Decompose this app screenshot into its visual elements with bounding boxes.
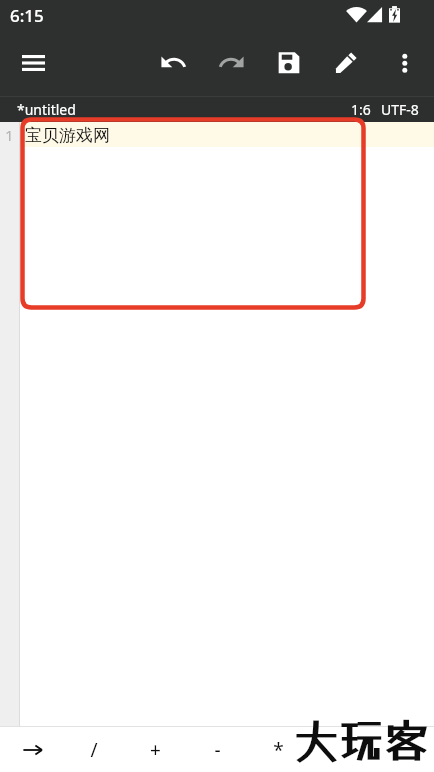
staticText: 1:6 xyxy=(351,100,371,119)
button[interactable]: Menu xyxy=(9,39,57,87)
button[interactable]: More options xyxy=(380,38,428,86)
staticText: - xyxy=(214,737,221,763)
button[interactable]: Save xyxy=(265,38,313,86)
staticText: * xyxy=(273,737,284,763)
button[interactable]: Redo xyxy=(207,38,255,86)
button[interactable]: / xyxy=(72,727,116,772)
button[interactable]: Edit xyxy=(322,38,370,86)
staticText: UTF-8 xyxy=(381,100,419,119)
staticText: 宝贝游戏网 xyxy=(25,125,110,146)
button[interactable]: * xyxy=(256,727,300,772)
button[interactable]: - xyxy=(195,727,239,772)
button[interactable]: Undo xyxy=(149,38,197,86)
staticText: 1 xyxy=(5,125,14,145)
staticText: 6:15 xyxy=(10,4,44,27)
staticText: / xyxy=(90,737,98,763)
staticText: 大玩客 xyxy=(294,714,430,767)
staticText: + xyxy=(150,737,161,763)
staticText: *untitled xyxy=(17,100,76,119)
button[interactable]: + xyxy=(133,727,177,772)
button[interactable]: Insert tab xyxy=(11,727,55,772)
